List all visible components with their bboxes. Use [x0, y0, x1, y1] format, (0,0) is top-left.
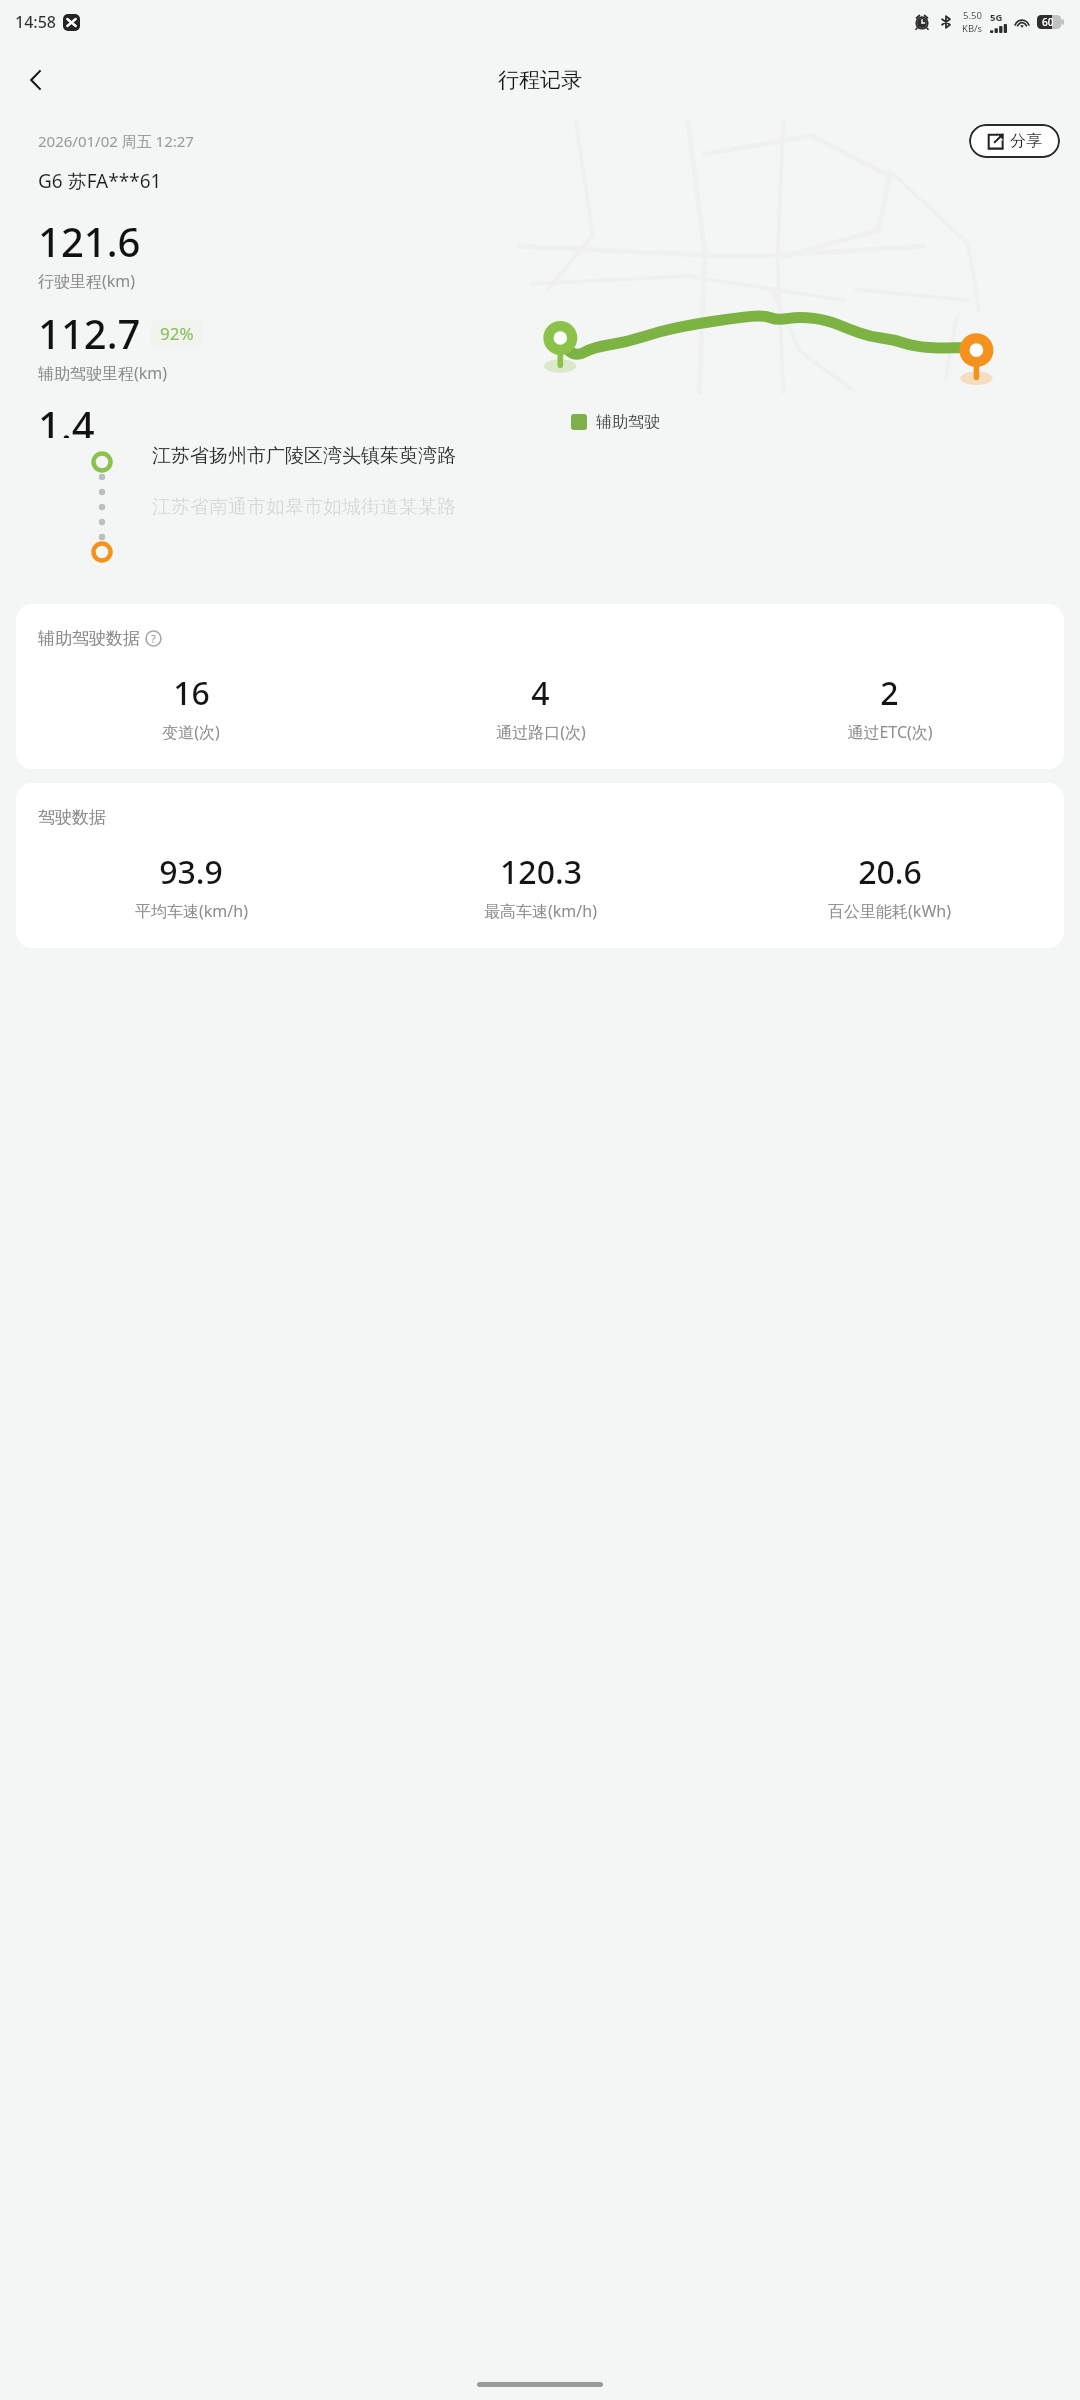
staticText: 112.7: [38, 306, 141, 360]
staticText: 60: [1042, 15, 1054, 29]
staticText: 分享: [1010, 131, 1042, 151]
staticText: 5.50: [963, 9, 982, 22]
staticText: 92%: [160, 322, 194, 345]
staticText: 1.4: [38, 398, 95, 438]
button[interactable]: 分享: [969, 124, 1060, 158]
staticText: 变道(次): [162, 721, 220, 743]
staticText: 江苏省南通市如皋市如城街道某某路: [152, 495, 456, 519]
staticText: 5G: [990, 11, 1003, 24]
staticText: 百公里能耗(kWh): [828, 900, 951, 922]
staticText: 江苏省扬州市广陵区湾头镇茱萸湾路: [152, 444, 456, 468]
staticText: 最高车速(km/h): [484, 900, 597, 922]
staticText: 2: [880, 671, 899, 715]
staticText: 14:58: [15, 11, 56, 33]
staticText: 行程记录: [498, 67, 582, 93]
button[interactable]: Back: [8, 52, 64, 108]
staticText: 4: [531, 671, 550, 715]
staticText: 辅助驾驶: [596, 412, 660, 432]
staticText: KB/s: [962, 22, 983, 35]
staticText: 通过路口(次): [496, 721, 586, 743]
staticText: 20.6: [858, 850, 922, 894]
staticText: ?: [151, 631, 156, 646]
staticText: 辅助驾驶里程(km): [38, 362, 168, 384]
staticText: 驾驶数据: [38, 807, 106, 828]
button[interactable]: Info: [144, 629, 163, 648]
staticText: 121.6: [38, 214, 141, 268]
staticText: 120.3: [500, 850, 582, 894]
staticText: 辅助驾驶数据: [38, 628, 140, 649]
staticText: 通过ETC(次): [847, 721, 933, 743]
staticText: 93.9: [159, 850, 223, 894]
staticText: 平均车速(km/h): [135, 900, 248, 922]
staticText: 2026/01/02 周五 12:27: [38, 131, 194, 151]
staticText: 16: [173, 671, 210, 715]
staticText: 行驶里程(km): [38, 270, 136, 292]
staticText: G6 苏FA***61: [38, 168, 162, 194]
